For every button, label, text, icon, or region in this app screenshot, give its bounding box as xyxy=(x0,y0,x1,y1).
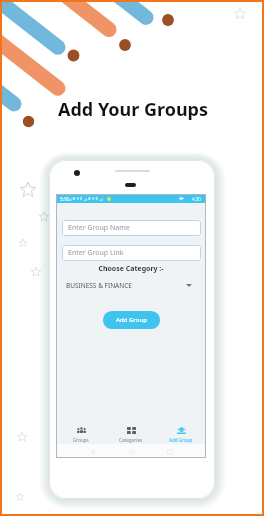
button[interactable]: BUSINESS & FINANCE xyxy=(66,279,192,291)
staticText: Choose Category :- xyxy=(56,264,206,274)
staticText: Add Group xyxy=(169,437,193,443)
staticText: Add Your Groups xyxy=(58,97,209,122)
button[interactable]: Add Group xyxy=(156,422,206,443)
button[interactable]: Enter Group Link xyxy=(68,245,195,261)
button[interactable]: Categories xyxy=(106,422,156,443)
staticText: Categories xyxy=(119,437,143,443)
button[interactable]: Home xyxy=(129,449,134,454)
staticText: 4:30 xyxy=(192,196,201,202)
staticText: Groups xyxy=(73,437,89,443)
button[interactable]: Recents xyxy=(167,449,172,454)
button[interactable]: Add Group xyxy=(103,311,160,329)
staticText: Add Group xyxy=(116,316,147,324)
staticText: Enter Group Link xyxy=(68,248,124,258)
staticText: 5:16 xyxy=(60,196,69,202)
button[interactable]: Back xyxy=(90,449,95,454)
staticText: BUSINESS & FINANCE xyxy=(66,281,132,290)
staticText: Enter Group Name xyxy=(68,223,130,233)
button[interactable]: Enter Group Name xyxy=(68,220,195,236)
button[interactable]: Groups xyxy=(56,422,106,443)
